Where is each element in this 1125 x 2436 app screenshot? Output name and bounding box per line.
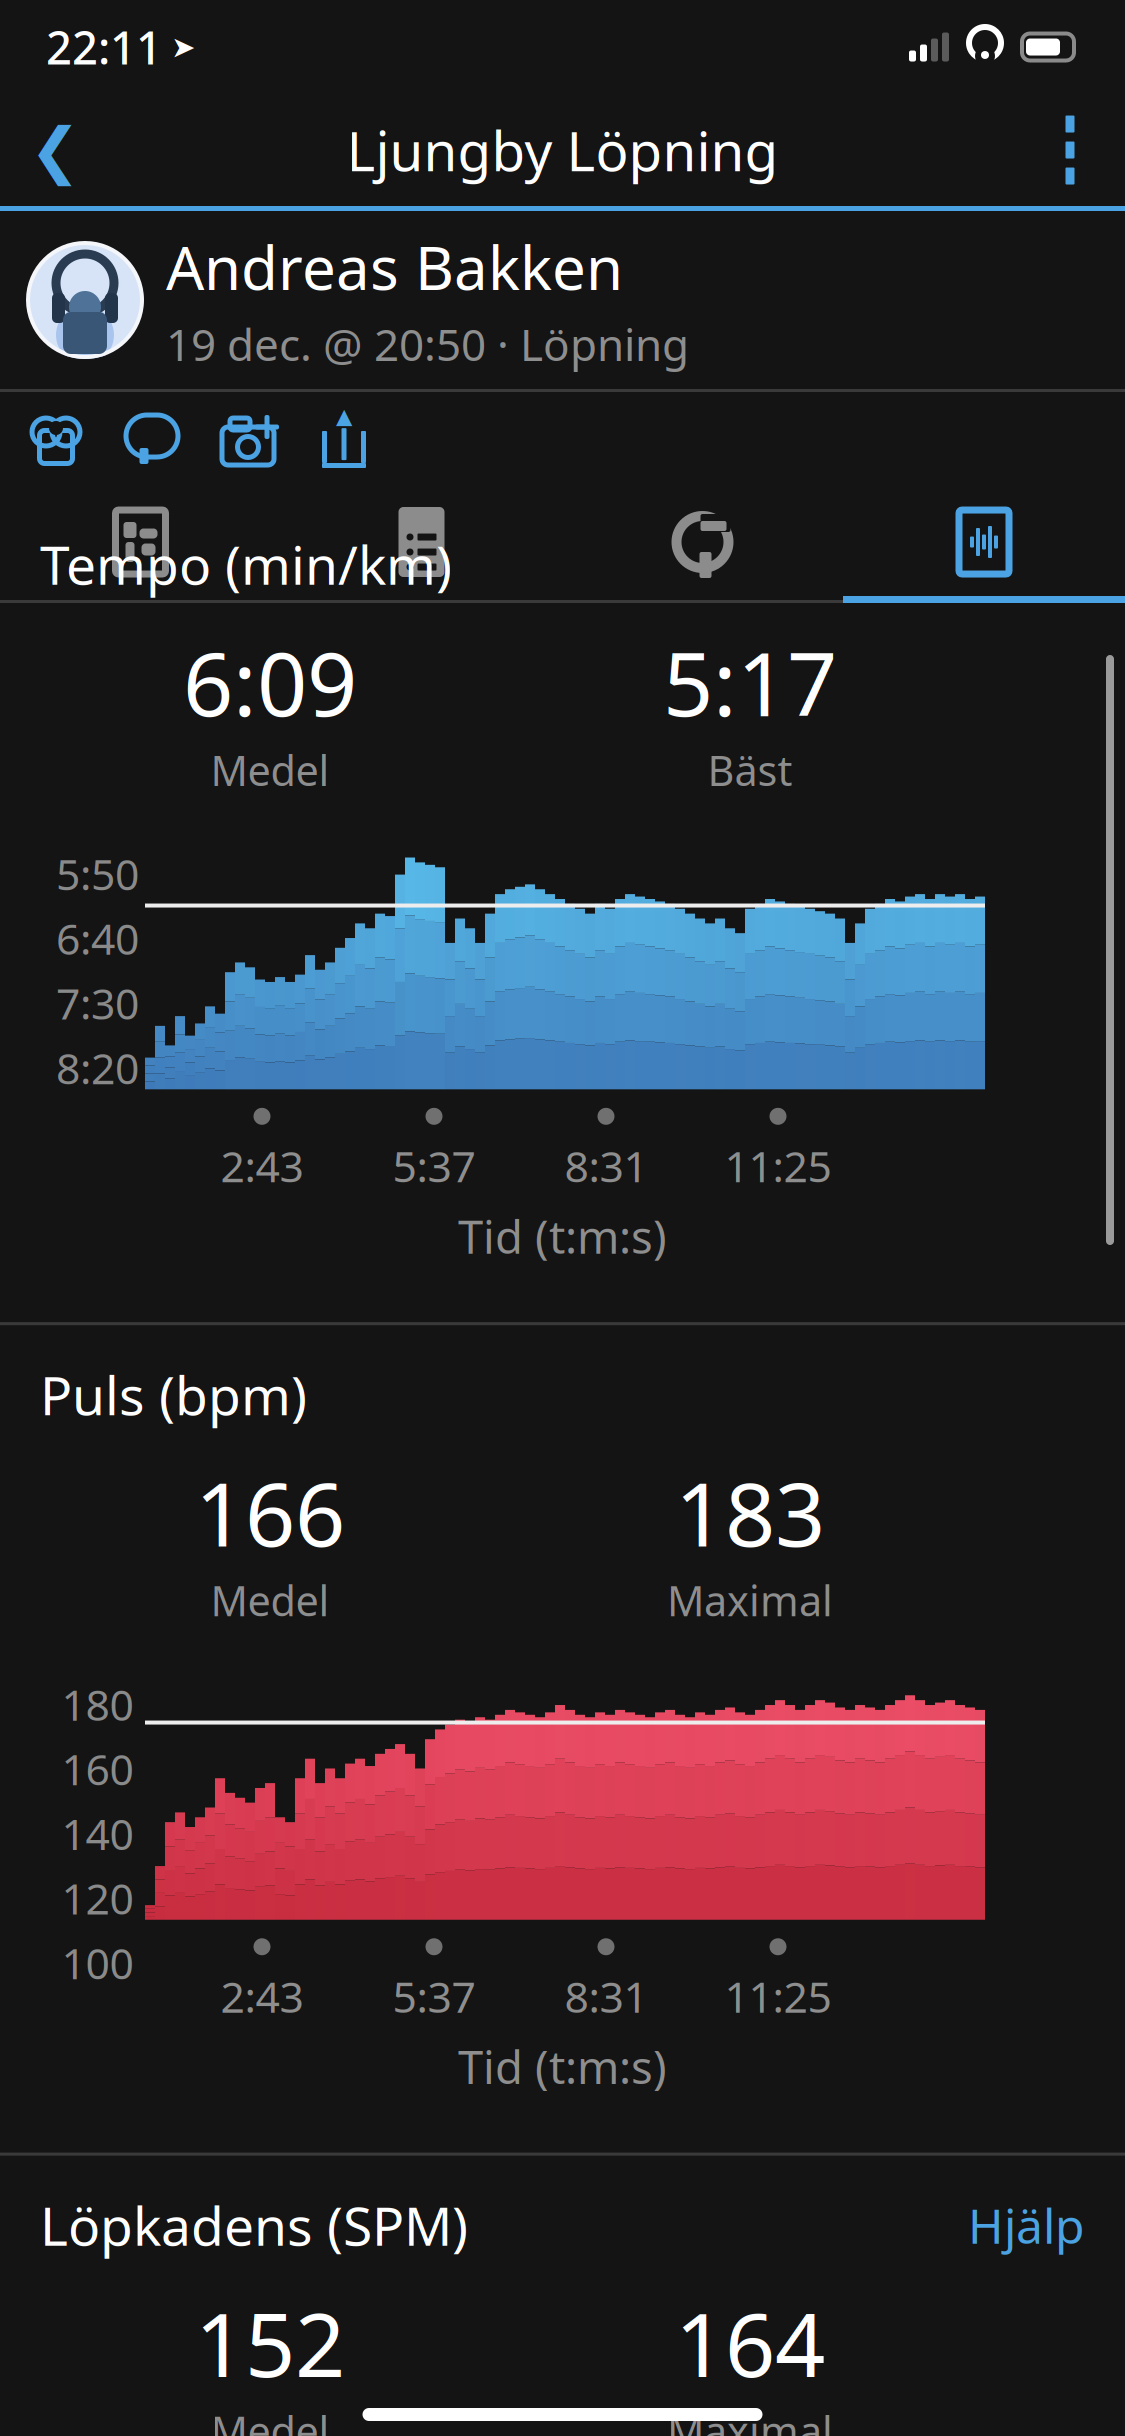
- staticText: 11:25: [724, 1968, 831, 2024]
- staticText: 5:50: [56, 845, 139, 902]
- staticText: 8:31: [564, 1137, 647, 1194]
- staticText: 2:43: [220, 1137, 303, 1194]
- staticText: Hjälp: [968, 2193, 1085, 2257]
- button[interactable]: Back: [0, 94, 110, 206]
- staticText: Tid (t:m:s): [458, 1206, 667, 1266]
- staticText: 2:43: [220, 1968, 303, 2024]
- staticText: Medel: [210, 2403, 329, 2436]
- staticText: 6:40: [56, 910, 139, 967]
- staticText: 166: [195, 1454, 345, 1571]
- staticText: 183: [675, 1454, 825, 1571]
- staticText: Maximal: [667, 1573, 833, 1628]
- staticText: 140: [61, 1805, 133, 1862]
- staticText: 180: [61, 1676, 133, 1732]
- staticText: 11:25: [724, 1137, 831, 1194]
- button[interactable]: Comment: [104, 392, 200, 488]
- staticText: 120: [61, 1870, 133, 1926]
- button[interactable]: Andreas Bakken profile: [26, 241, 144, 359]
- staticText: Tempo (min/km): [40, 529, 452, 599]
- staticText: Tid (t:m:s): [458, 2036, 667, 2097]
- staticText: 5:37: [392, 1137, 475, 1194]
- button[interactable]: More options: [1015, 94, 1125, 206]
- staticText: Löpkadens (SPM): [40, 2190, 468, 2260]
- button[interactable]: Like: [8, 392, 104, 488]
- staticText: ▲: [336, 404, 352, 428]
- staticText: Bäst: [707, 742, 792, 797]
- staticText: ❮: [29, 115, 80, 185]
- button[interactable]: Map: [0, 488, 281, 596]
- button[interactable]: Add photo: [200, 392, 296, 488]
- staticText: Medel: [210, 742, 329, 797]
- button[interactable]: Hjälp: [968, 2193, 1085, 2257]
- staticText: Ljungby Löpning: [346, 114, 778, 186]
- staticText: 19 dec. @ 20:50 · Löpning: [166, 315, 689, 373]
- staticText: 164: [675, 2284, 825, 2401]
- staticText: 7:30: [56, 975, 139, 1031]
- staticText: 5:37: [392, 1968, 475, 2024]
- staticText: 152: [195, 2284, 345, 2401]
- staticText: 6:09: [183, 624, 357, 740]
- button[interactable]: Laps: [562, 488, 843, 596]
- button[interactable]: Summary: [281, 488, 562, 596]
- staticText: Maximal: [667, 2403, 833, 2436]
- staticText: 8:31: [564, 1968, 647, 2024]
- staticText: 160: [61, 1740, 133, 1797]
- staticText: 8:20: [56, 1039, 139, 1096]
- staticText: Medel: [210, 1573, 329, 1628]
- staticText: ➤: [162, 30, 196, 64]
- button[interactable]: Share: [296, 392, 392, 488]
- staticText: Puls (bpm): [40, 1359, 307, 1430]
- staticText: 22:11: [46, 17, 162, 77]
- staticText: 5:17: [663, 624, 837, 740]
- staticText: 100: [61, 1934, 133, 1991]
- button[interactable]: Charts: [843, 488, 1125, 596]
- staticText: Andreas Bakken: [166, 227, 623, 307]
